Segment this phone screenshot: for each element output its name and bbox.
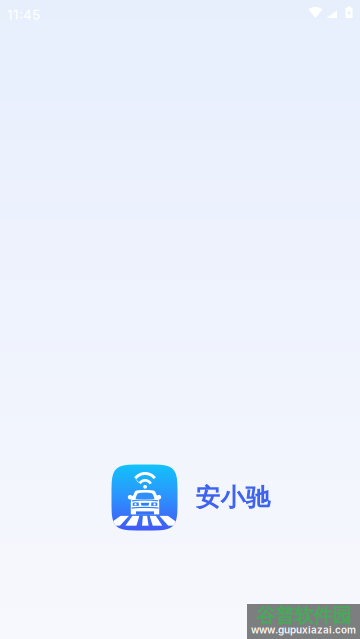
staticText: www.gupuxiazai.com (251, 624, 356, 636)
staticText: 谷普软件园 (256, 603, 351, 628)
staticText: 11:45 (7, 7, 40, 23)
staticText: 安小驰 (195, 482, 270, 513)
